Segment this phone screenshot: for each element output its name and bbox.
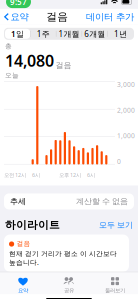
staticText: 걸음 (55, 60, 71, 70)
button[interactable]: 둘러보기 (92, 277, 138, 294)
staticText: 1주 (37, 28, 50, 39)
staticText: 1년 (114, 28, 127, 39)
staticText: 오후 12시 (59, 171, 81, 178)
staticText: 둘러보기 (105, 287, 125, 294)
staticText: 모두 보기 (99, 220, 133, 230)
button[interactable]: 1주 (31, 29, 56, 39)
staticText: 0 (117, 157, 121, 166)
button[interactable]: 공유 (46, 277, 92, 294)
button[interactable]: 요약 (0, 8, 28, 26)
staticText: 2,000 (117, 106, 135, 115)
staticText: 1일 (11, 28, 24, 39)
button[interactable]: 모두 보기 (99, 220, 133, 230)
staticText: 오전 12시 (4, 171, 26, 178)
staticText: 6개월 (84, 28, 105, 39)
staticText: 오늘 (5, 71, 19, 79)
staticText: 요약 (18, 287, 28, 294)
button[interactable]: 1년 (108, 29, 133, 39)
staticText: 14,080 (5, 50, 54, 71)
staticText: 9:57 (10, 0, 27, 7)
button[interactable]: 요약 (0, 277, 46, 294)
staticText: 걸음 (46, 10, 68, 23)
staticText: 1개월 (58, 28, 79, 39)
button[interactable]: 1일 (5, 29, 30, 39)
button[interactable]: 6개월 (82, 29, 107, 39)
staticText: 추세 (10, 196, 26, 206)
staticText: 총 (5, 42, 12, 50)
staticText: 하이라이트 (5, 218, 60, 231)
staticText: 6시 (87, 171, 95, 178)
button[interactable]: 1개월 (56, 29, 82, 39)
staticText: 요약 (10, 11, 28, 23)
staticText: 공유 (64, 287, 74, 294)
staticText: 걸음 (16, 239, 30, 248)
staticText: 3,000 (117, 80, 135, 89)
staticText: 현재 걷기 거리가 평소 이 시간보다 높습니다. (9, 250, 117, 267)
button[interactable]: 걸음 (0, 234, 129, 272)
button[interactable]: 추세 (0, 185, 138, 209)
staticText: 1,000 (117, 131, 135, 140)
staticText: 데이터 추가 (86, 11, 134, 23)
staticText: 6시 (32, 171, 40, 178)
button[interactable]: 데이터 추가 (86, 8, 138, 26)
staticText: 계산할 수 없음 (76, 196, 128, 206)
